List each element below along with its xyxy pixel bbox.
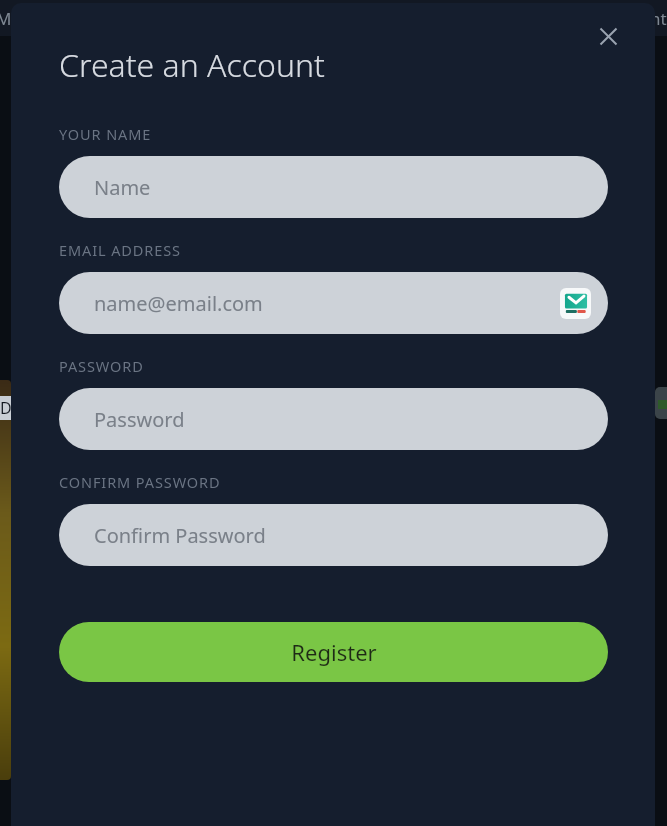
staticText: Confirm Password xyxy=(94,522,266,549)
button[interactable]: Close xyxy=(587,15,629,57)
staticText: Create an Account xyxy=(59,43,325,87)
staticText: YOUR NAME xyxy=(59,124,152,144)
button[interactable]: name@email.com xyxy=(59,272,608,334)
button[interactable]: Password xyxy=(59,388,608,450)
button[interactable]: Generate temporary email xyxy=(560,288,591,319)
staticText: Mo xyxy=(0,7,22,30)
staticText: Password xyxy=(94,406,185,433)
staticText: EMAIL ADDRESS xyxy=(59,240,181,260)
button[interactable]: Name xyxy=(59,156,608,218)
staticText: name@email.com xyxy=(94,290,263,317)
button[interactable]: Confirm Password xyxy=(59,504,608,566)
staticText: Name xyxy=(94,174,151,201)
staticText: CONFIRM PASSWORD xyxy=(59,472,221,492)
staticText: D xyxy=(0,397,11,419)
staticText: PASSWORD xyxy=(59,356,144,376)
staticText: Register xyxy=(291,637,377,667)
button[interactable]: Register xyxy=(59,622,608,682)
staticText: nt xyxy=(650,7,667,30)
